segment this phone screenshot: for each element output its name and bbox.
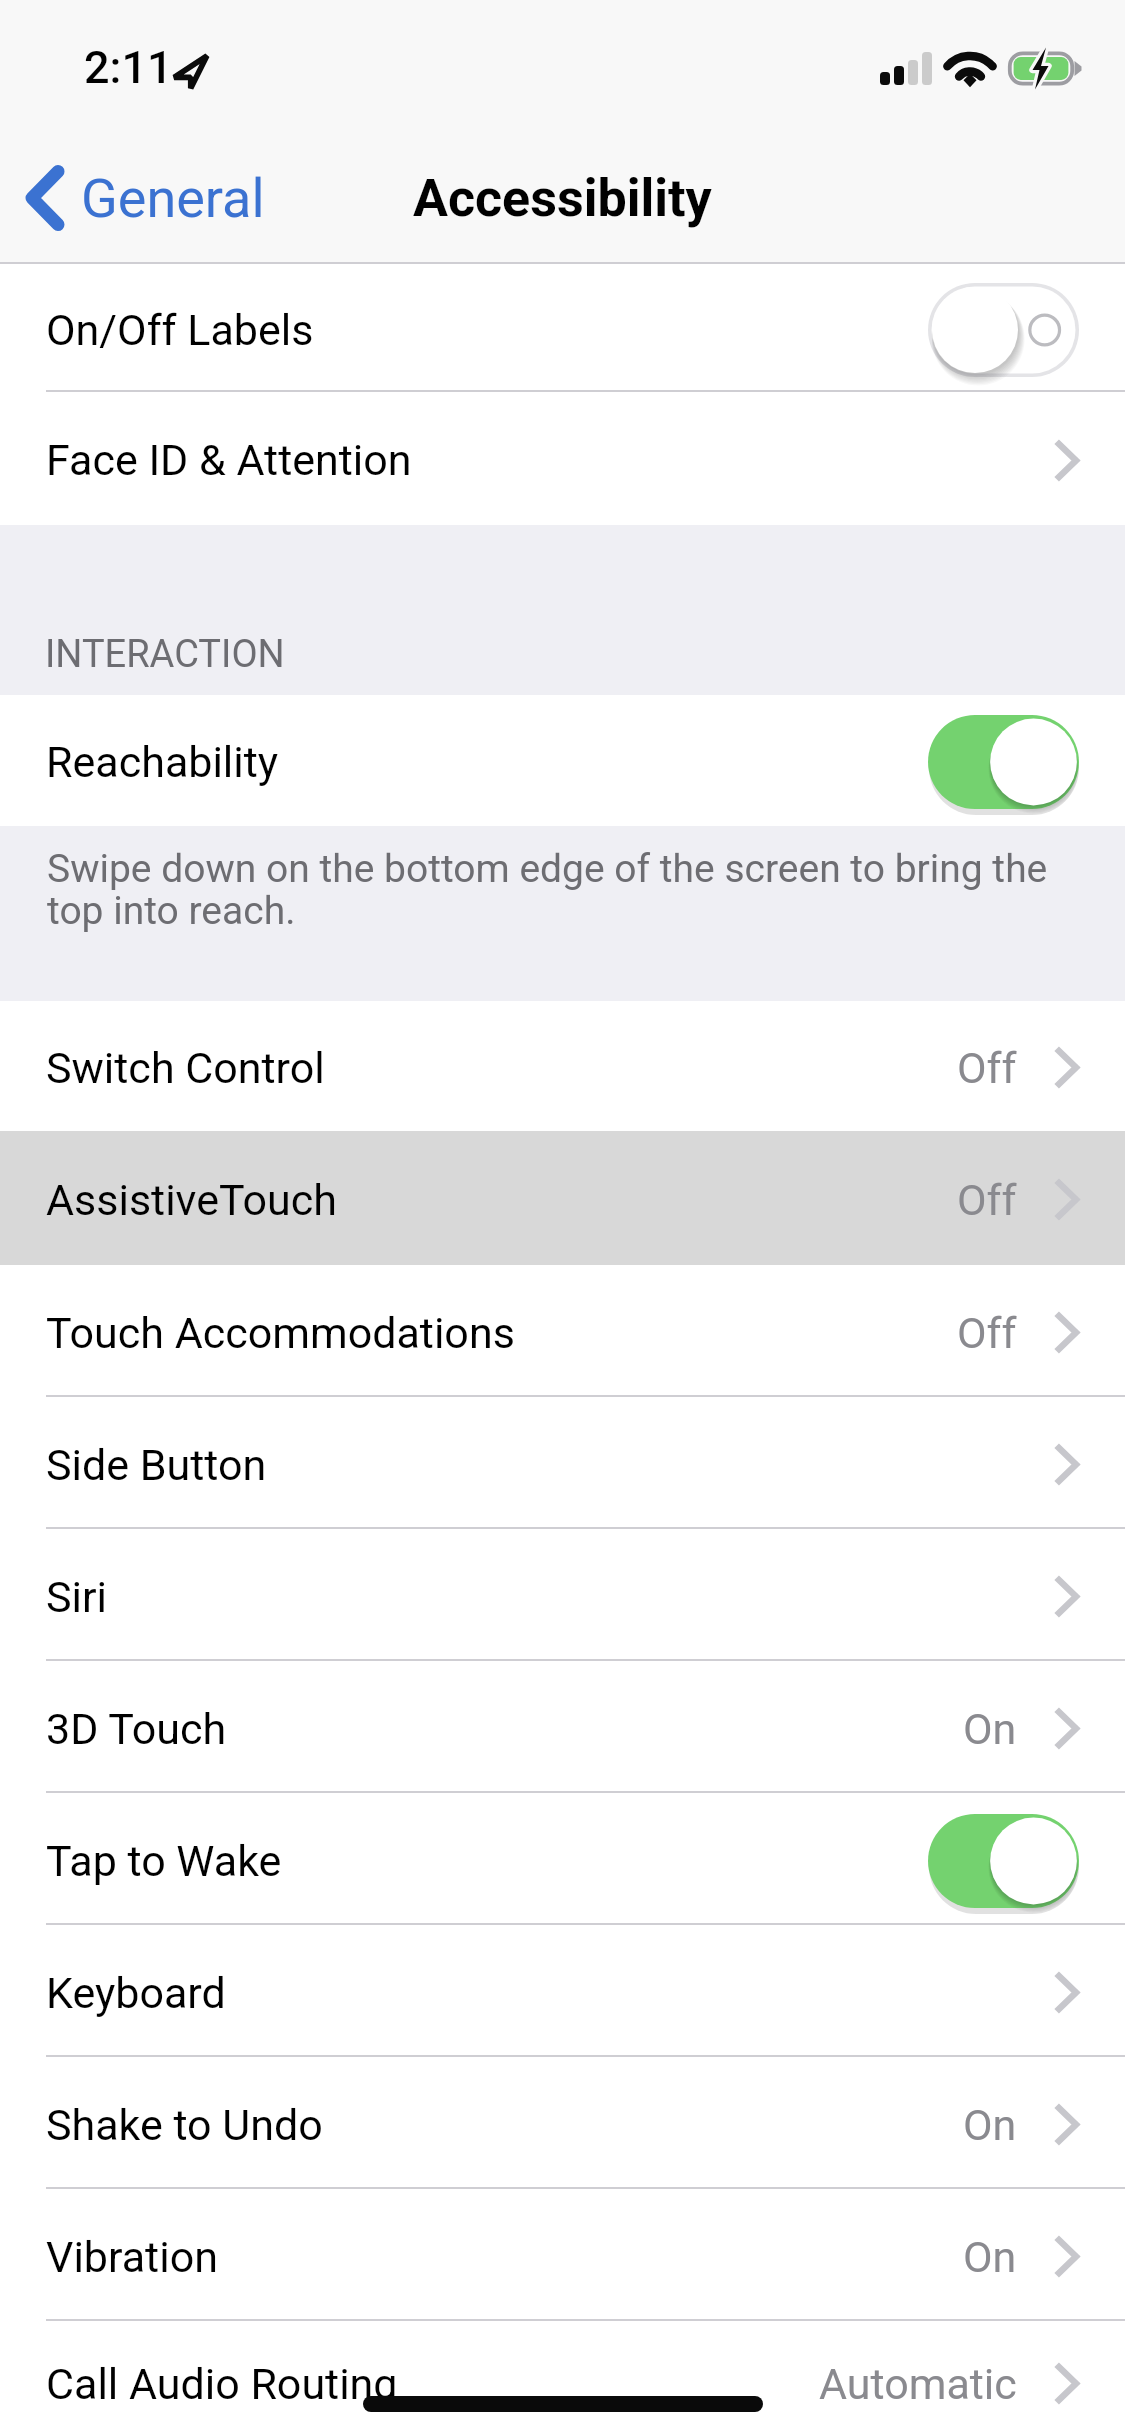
staticText: On xyxy=(963,2100,1017,2150)
button[interactable]: Siri xyxy=(0,1529,1125,1661)
button[interactable]: Switch, on xyxy=(928,715,1079,809)
staticText: Off xyxy=(957,1308,1017,1358)
staticText: Shake to Undo xyxy=(46,2100,323,2150)
button[interactable]: Vibration xyxy=(0,2189,1125,2321)
staticText: On xyxy=(963,2232,1017,2282)
staticText: Side Button xyxy=(46,1440,267,1490)
button[interactable]: Reachability xyxy=(0,695,1125,826)
button[interactable]: Switch, on xyxy=(928,1814,1079,1908)
button[interactable]: Keyboard xyxy=(0,1925,1125,2057)
staticText: Off xyxy=(957,1175,1017,1225)
staticText: Reachability xyxy=(46,737,279,787)
staticText: Tap to Wake xyxy=(46,1836,282,1886)
button[interactable]: Switch, off xyxy=(928,283,1079,377)
button[interactable]: AssistiveTouch xyxy=(0,1131,1125,1265)
button[interactable]: 3D Touch xyxy=(0,1661,1125,1793)
staticText: Vibration xyxy=(46,2232,218,2282)
staticText: On/Off Labels xyxy=(46,305,314,355)
staticText: 3D Touch xyxy=(46,1704,227,1754)
button[interactable]: Call Audio Routing xyxy=(0,2321,1125,2436)
staticText: Siri xyxy=(46,1572,108,1622)
staticText: On xyxy=(963,1704,1017,1754)
staticText: AssistiveTouch xyxy=(46,1175,337,1225)
button[interactable]: On/Off Labels xyxy=(0,264,1125,392)
staticText: INTERACTION xyxy=(45,632,285,677)
staticText: Call Audio Routing xyxy=(46,2359,398,2409)
staticText: Face ID & Attention xyxy=(46,435,412,485)
staticText: 2:11 xyxy=(84,41,173,94)
staticText: Off xyxy=(957,1043,1017,1093)
button[interactable]: Back to General xyxy=(26,165,265,231)
button[interactable]: Face ID & Attention xyxy=(0,392,1125,525)
staticText: General xyxy=(81,167,265,230)
staticText: Touch Accommodations xyxy=(46,1308,515,1358)
staticText: Switch Control xyxy=(46,1043,325,1093)
staticText: Accessibility xyxy=(413,168,712,229)
button[interactable]: Switch Control xyxy=(0,1001,1125,1131)
button[interactable]: Tap to Wake xyxy=(0,1793,1125,1925)
button[interactable]: Side Button xyxy=(0,1397,1125,1529)
staticText: Automatic xyxy=(819,2359,1017,2409)
staticText: Swipe down on the bottom edge of the scr… xyxy=(47,846,1077,934)
staticText: Keyboard xyxy=(46,1968,226,2018)
button[interactable]: Shake to Undo xyxy=(0,2057,1125,2189)
button[interactable]: Touch Accommodations xyxy=(0,1265,1125,1397)
